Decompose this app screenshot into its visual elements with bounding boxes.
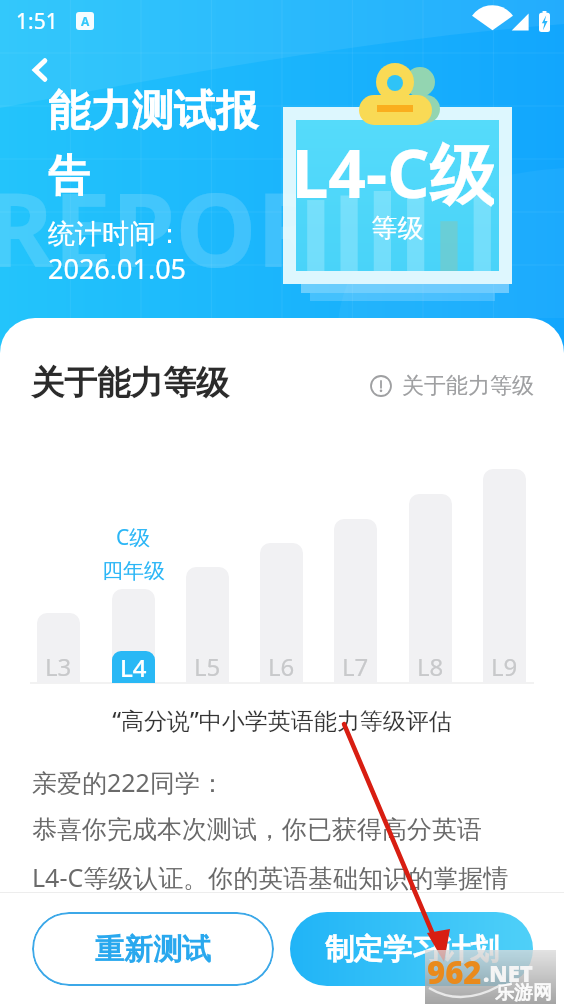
staticText: 1:51 bbox=[16, 7, 58, 36]
button[interactable]: 制定学习计划 bbox=[290, 912, 533, 986]
button[interactable]: Back bbox=[20, 50, 60, 90]
button[interactable]: 重新测试 bbox=[32, 912, 274, 986]
staticText: L4 bbox=[120, 651, 147, 683]
staticText: L5 bbox=[194, 650, 221, 683]
staticText: 重新测试 bbox=[95, 931, 211, 968]
staticText: 乐游网 bbox=[495, 981, 552, 1004]
staticText: REPORT bbox=[0, 157, 384, 297]
staticText: L4-C级 bbox=[291, 127, 494, 217]
staticText: 恭喜你完成本次测试，你已获得高分英语 bbox=[32, 814, 482, 845]
staticText: L4-C等级认证。你的英语基础知识的掌握情 bbox=[32, 860, 509, 894]
staticText: 962 bbox=[427, 951, 482, 993]
staticText: 2026.01.05 bbox=[48, 250, 187, 287]
staticText: 等级 bbox=[296, 212, 499, 245]
staticText: 统计时间： bbox=[48, 217, 183, 251]
staticText: C级 bbox=[116, 523, 151, 552]
staticText: 告 bbox=[48, 150, 90, 203]
staticText: 制定学习计划 bbox=[325, 931, 499, 968]
staticText: L8 bbox=[417, 650, 444, 683]
staticText: L6 bbox=[268, 650, 295, 683]
staticText: A bbox=[81, 13, 90, 29]
button[interactable]: 关于能力等级 bbox=[366, 368, 538, 404]
staticText: 亲爱的222同学： bbox=[32, 765, 225, 799]
staticText: 四年级 bbox=[102, 558, 165, 584]
staticText: .NET bbox=[483, 958, 533, 988]
staticText: L3 bbox=[45, 650, 72, 683]
staticText: 关于能力等级 bbox=[31, 362, 229, 404]
staticText: L7 bbox=[342, 650, 369, 683]
staticText: “高分说”中小学英语能力等级评估 bbox=[0, 704, 564, 735]
staticText: 能力测试报 bbox=[48, 85, 258, 138]
staticText: L9 bbox=[491, 650, 518, 683]
staticText: 关于能力等级 bbox=[402, 372, 534, 400]
